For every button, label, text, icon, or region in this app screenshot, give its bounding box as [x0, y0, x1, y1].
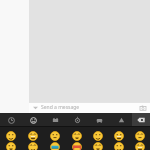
button[interactable]: Emoji 1: [0, 127, 22, 144]
button[interactable]: Animals: [44, 113, 66, 127]
button[interactable]: Food: [66, 113, 88, 127]
button[interactable]: Emoji 9: [22, 144, 44, 150]
button[interactable]: Emoji 10: [44, 144, 66, 150]
button[interactable]: Emoji 2: [22, 127, 44, 144]
button[interactable]: Emoji 13: [108, 144, 129, 150]
button[interactable]: Emoji 7: [129, 127, 150, 144]
button[interactable]: Emoji 5: [87, 127, 108, 144]
button[interactable]: Emoji 6: [108, 127, 129, 144]
button[interactable]: Emoji 12: [87, 144, 108, 150]
button[interactable]: Travel: [88, 113, 110, 127]
button[interactable]: Send a message: [29, 102, 150, 113]
button[interactable]: Emoji 3: [44, 127, 66, 144]
button[interactable]: Emoji 11: [66, 144, 87, 150]
button[interactable]: Emoji 8: [0, 144, 22, 150]
button[interactable]: Camera: [138, 103, 147, 112]
button[interactable]: Recent: [0, 113, 22, 127]
staticText: Send a message: [41, 104, 80, 111]
button[interactable]: Smileys: [22, 113, 44, 127]
button[interactable]: Backspace: [132, 113, 150, 127]
button[interactable]: Emoji 4: [66, 127, 87, 144]
button[interactable]: Nature: [110, 113, 132, 127]
button[interactable]: Emoji 14: [129, 144, 150, 150]
